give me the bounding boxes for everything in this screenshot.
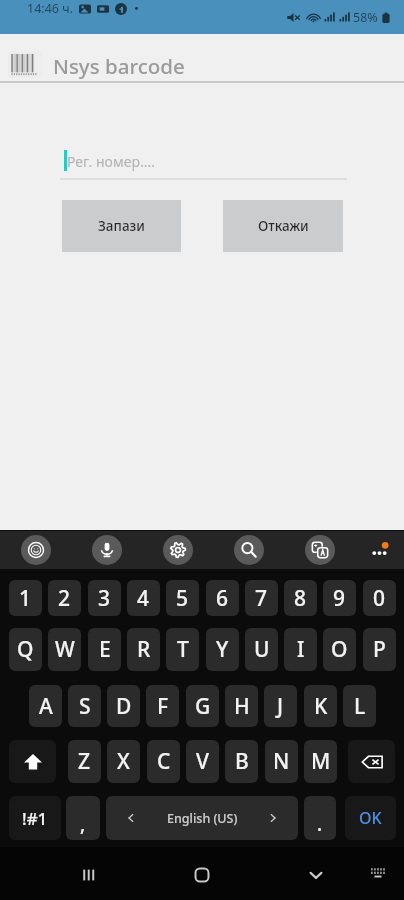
button[interactable]: S <box>68 685 101 727</box>
button[interactable]: N <box>265 740 298 783</box>
staticText: V <box>196 747 209 776</box>
button[interactable]: U <box>245 628 278 671</box>
staticText: K <box>314 692 328 721</box>
staticText: . <box>317 811 323 837</box>
button[interactable]: Translate <box>305 535 335 565</box>
staticText: 7 <box>255 584 268 613</box>
button[interactable]: 0 <box>363 580 396 616</box>
staticText: 58% <box>353 9 378 26</box>
button[interactable]: 3 <box>88 580 121 616</box>
button[interactable]: Voice input <box>92 535 122 565</box>
staticText: F <box>157 692 169 721</box>
button[interactable]: 6 <box>206 580 239 616</box>
button[interactable]: F <box>146 685 179 727</box>
staticText: J <box>277 692 284 721</box>
staticText: 8 <box>294 584 307 613</box>
staticText: N <box>273 747 290 776</box>
staticText: Запази <box>98 217 145 235</box>
staticText: 6 <box>216 584 229 613</box>
staticText: O <box>331 635 348 664</box>
button[interactable]: 4 <box>127 580 160 616</box>
staticText: Nsys barcode <box>53 52 185 80</box>
button[interactable]: H <box>225 685 258 727</box>
staticText: T <box>177 635 189 664</box>
button[interactable]: , <box>66 796 100 840</box>
button[interactable]: Settings <box>163 535 193 565</box>
staticText: 3 <box>98 584 111 613</box>
button[interactable]: 7 <box>245 580 278 616</box>
staticText: 1 <box>19 584 32 613</box>
button[interactable]: Emoji <box>21 535 51 565</box>
staticText: A <box>39 692 53 721</box>
button[interactable]: Hide keyboard <box>297 856 335 894</box>
staticText: C <box>157 747 171 776</box>
staticText: English (US) <box>167 810 238 827</box>
button[interactable]: W <box>48 628 81 671</box>
staticText: 9 <box>333 584 346 613</box>
button[interactable]: K <box>304 685 337 727</box>
staticText: Q <box>17 635 34 664</box>
button[interactable]: Shift <box>9 740 56 783</box>
staticText: W <box>55 635 75 664</box>
button[interactable]: M <box>304 740 337 783</box>
button[interactable]: C <box>147 740 180 783</box>
button[interactable]: Recents <box>70 856 108 894</box>
button[interactable]: 9 <box>323 580 356 616</box>
button[interactable]: I <box>284 628 317 671</box>
button[interactable]: L <box>343 685 376 727</box>
staticText: R <box>137 635 151 664</box>
button[interactable]: Y <box>206 628 239 671</box>
button[interactable]: More options <box>365 535 395 565</box>
button[interactable]: T <box>166 628 199 671</box>
staticText: Y <box>216 635 229 664</box>
staticText: 14:46 ч. <box>27 0 73 17</box>
staticText: Z <box>78 747 91 776</box>
button[interactable]: 8 <box>284 580 317 616</box>
button[interactable]: !#1 <box>9 796 61 840</box>
button[interactable]: OK <box>345 796 396 840</box>
button[interactable]: O <box>323 628 356 671</box>
staticText: P <box>373 635 386 664</box>
button[interactable]: Q <box>9 628 42 671</box>
button[interactable]: Keyboard <box>365 860 391 886</box>
button[interactable]: English (US) <box>106 796 298 840</box>
button[interactable]: Search <box>234 535 264 565</box>
staticText: E <box>99 635 111 664</box>
staticText: S <box>79 692 91 721</box>
button[interactable]: Запази <box>62 200 181 252</box>
button[interactable]: V <box>186 740 219 783</box>
staticText: H <box>234 692 250 721</box>
staticText: , <box>80 811 86 837</box>
button[interactable]: D <box>107 685 140 727</box>
staticText: Рег. номер.... <box>67 152 155 171</box>
button[interactable]: B <box>225 740 258 783</box>
button[interactable]: Z <box>68 740 101 783</box>
button[interactable]: E <box>88 628 121 671</box>
staticText: D <box>116 692 132 721</box>
staticText: !#1 <box>22 807 48 830</box>
staticText: G <box>195 692 211 721</box>
button[interactable]: Backspace <box>348 740 395 783</box>
staticText: 2 <box>58 584 71 613</box>
button[interactable]: Откажи <box>223 200 343 252</box>
button[interactable]: P <box>363 628 396 671</box>
staticText: L <box>354 692 366 721</box>
button[interactable]: X <box>107 740 140 783</box>
staticText: I <box>297 635 305 664</box>
staticText: 5 <box>176 584 189 613</box>
button[interactable]: 2 <box>48 580 81 616</box>
button[interactable]: G <box>186 685 219 727</box>
button[interactable]: 1 <box>9 580 42 616</box>
button[interactable]: R <box>127 628 160 671</box>
staticText: Откажи <box>258 217 309 235</box>
button[interactable]: 5 <box>166 580 199 616</box>
staticText: U <box>254 635 270 664</box>
staticText: 0 <box>373 584 386 613</box>
button[interactable]: . <box>304 796 336 840</box>
button[interactable]: J <box>264 685 297 727</box>
staticText: X <box>117 747 130 776</box>
button[interactable]: A <box>29 685 62 727</box>
staticText: OK <box>359 807 382 829</box>
button[interactable]: Home <box>183 856 221 894</box>
staticText: 4 <box>137 584 150 613</box>
